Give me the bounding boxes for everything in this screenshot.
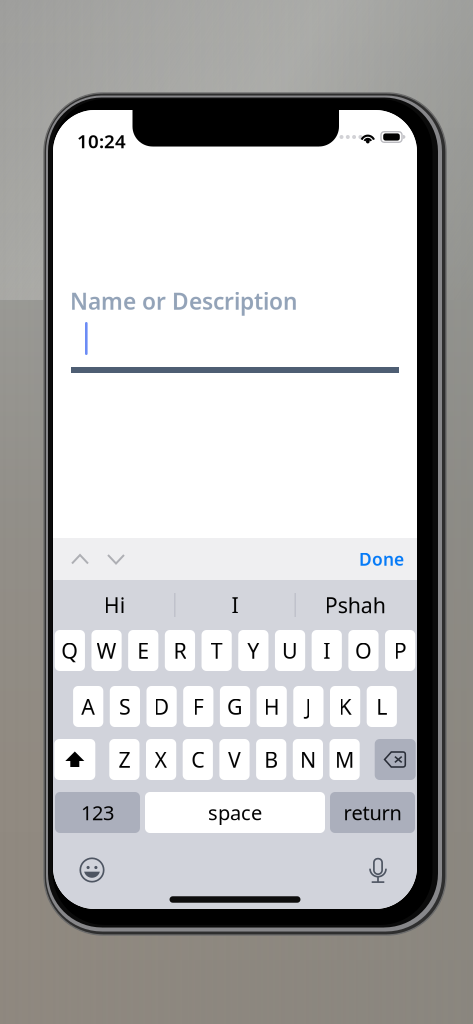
button[interactable]: S bbox=[110, 686, 140, 727]
button[interactable]: return bbox=[330, 792, 415, 833]
button[interactable]: F bbox=[183, 686, 213, 727]
button[interactable]: 123 bbox=[55, 792, 140, 833]
staticText: 123 bbox=[81, 799, 114, 826]
button[interactable]: T bbox=[202, 630, 232, 671]
staticText: W bbox=[97, 636, 117, 665]
staticText: D bbox=[154, 692, 170, 721]
button[interactable]: I bbox=[175, 580, 295, 630]
button[interactable]: O bbox=[348, 630, 379, 671]
button[interactable]: Shift bbox=[54, 739, 95, 780]
staticText: I bbox=[231, 591, 238, 619]
staticText: E bbox=[137, 636, 149, 665]
staticText: I bbox=[323, 636, 330, 665]
staticText: V bbox=[228, 745, 241, 774]
staticText: O bbox=[355, 636, 372, 665]
staticText: return bbox=[343, 799, 401, 826]
staticText: X bbox=[155, 745, 168, 774]
button[interactable]: H bbox=[257, 686, 287, 727]
staticText: Done bbox=[359, 547, 404, 570]
button[interactable]: X bbox=[146, 739, 176, 780]
staticText: C bbox=[191, 745, 204, 774]
button[interactable]: C bbox=[183, 739, 213, 780]
button[interactable]: W bbox=[91, 630, 122, 671]
button[interactable]: L bbox=[367, 686, 397, 727]
staticText: 10:24 bbox=[77, 128, 126, 153]
button[interactable]: space bbox=[145, 792, 325, 833]
button[interactable]: Delete bbox=[375, 739, 416, 780]
button[interactable]: Emoji keyboard bbox=[73, 851, 111, 889]
button[interactable]: Next field bbox=[98, 538, 134, 580]
button[interactable]: N bbox=[293, 739, 323, 780]
staticText: Name or Description bbox=[70, 286, 297, 316]
staticText: J bbox=[305, 692, 311, 721]
button[interactable]: G bbox=[220, 686, 250, 727]
staticText: T bbox=[211, 636, 223, 665]
button[interactable]: Y bbox=[238, 630, 268, 671]
button[interactable]: B bbox=[256, 739, 286, 780]
staticText: P bbox=[394, 636, 407, 665]
staticText: K bbox=[339, 692, 352, 721]
staticText: Hi bbox=[104, 591, 126, 619]
button[interactable]: R bbox=[165, 630, 195, 671]
staticText: G bbox=[227, 692, 243, 721]
button[interactable]: U bbox=[275, 630, 305, 671]
staticText: Q bbox=[61, 636, 78, 665]
staticText: S bbox=[119, 692, 131, 721]
staticText: F bbox=[193, 692, 204, 721]
staticText: Y bbox=[247, 636, 259, 665]
button[interactable]: I bbox=[312, 630, 342, 671]
button[interactable]: P bbox=[385, 630, 415, 671]
button[interactable]: Previous field bbox=[62, 538, 98, 580]
staticText: N bbox=[300, 745, 316, 774]
staticText: A bbox=[81, 692, 95, 721]
staticText: R bbox=[173, 636, 186, 665]
button[interactable]: Z bbox=[109, 739, 139, 780]
staticText: H bbox=[264, 692, 280, 721]
staticText: B bbox=[264, 745, 278, 774]
staticText: Z bbox=[118, 745, 130, 774]
button[interactable]: A bbox=[73, 686, 103, 727]
staticText: M bbox=[335, 745, 354, 774]
button[interactable]: Done bbox=[359, 538, 417, 580]
button[interactable]: Pshah bbox=[296, 580, 415, 630]
staticText: U bbox=[282, 636, 298, 665]
button[interactable]: E bbox=[128, 630, 158, 671]
button[interactable]: J bbox=[293, 686, 323, 727]
staticText: L bbox=[376, 692, 387, 721]
button[interactable]: D bbox=[146, 686, 177, 727]
button[interactable]: K bbox=[330, 686, 360, 727]
staticText: Pshah bbox=[325, 591, 386, 619]
button[interactable]: Hi bbox=[55, 580, 174, 630]
button[interactable]: Q bbox=[55, 630, 85, 671]
button[interactable]: Dictation bbox=[359, 851, 397, 889]
button[interactable]: V bbox=[219, 739, 250, 780]
button[interactable]: M bbox=[329, 739, 360, 780]
staticText: space bbox=[208, 799, 262, 826]
